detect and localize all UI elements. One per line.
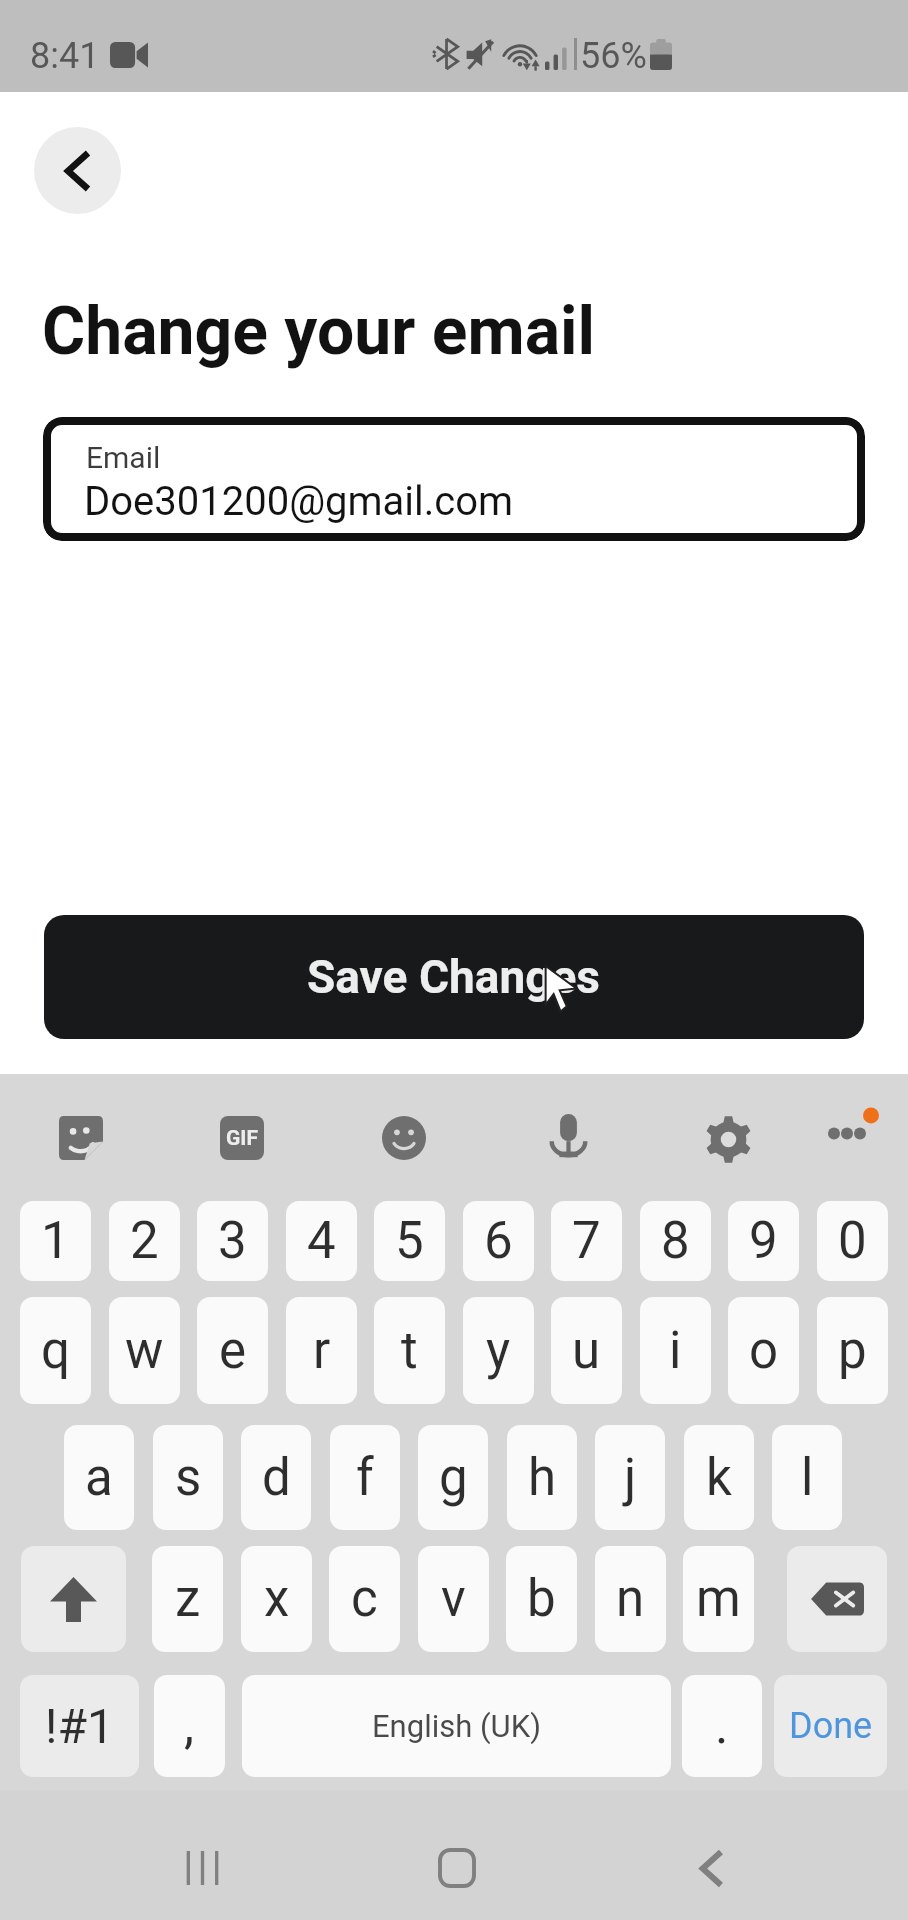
- button[interactable]: 8: [640, 1201, 711, 1281]
- button[interactable]: h: [507, 1425, 577, 1530]
- staticText: Email: [86, 440, 161, 475]
- button[interactable]: .: [682, 1675, 762, 1777]
- button[interactable]: w: [109, 1297, 180, 1404]
- staticText: Change your email: [42, 293, 596, 370]
- button[interactable]: 0: [817, 1201, 888, 1281]
- button[interactable]: ,: [154, 1675, 225, 1777]
- staticText: g: [439, 1448, 468, 1508]
- staticText: w: [125, 1321, 164, 1381]
- button[interactable]: Save Changes: [44, 915, 864, 1039]
- staticText: r: [313, 1321, 331, 1381]
- button[interactable]: 3: [197, 1201, 268, 1281]
- button[interactable]: Recents: [157, 1823, 247, 1913]
- staticText: o: [749, 1321, 779, 1381]
- staticText: x: [264, 1569, 290, 1629]
- button[interactable]: y: [463, 1297, 534, 1404]
- staticText: 56%: [580, 35, 647, 77]
- button[interactable]: 2: [109, 1201, 180, 1281]
- button[interactable]: c: [329, 1546, 400, 1652]
- staticText: t: [401, 1321, 418, 1381]
- staticText: !#1: [45, 1698, 114, 1754]
- staticText: 1: [41, 1211, 70, 1271]
- staticText: Save Changes: [307, 950, 601, 1004]
- button[interactable]: i: [640, 1297, 711, 1404]
- button[interactable]: 4: [286, 1201, 357, 1281]
- button[interactable]: x: [241, 1546, 312, 1652]
- staticText: Doe301200@gmail.com: [84, 478, 514, 525]
- staticText: p: [838, 1321, 867, 1381]
- staticText: .: [715, 1696, 729, 1756]
- staticText: Done: [789, 1705, 873, 1747]
- staticText: e: [219, 1321, 247, 1381]
- button[interactable]: n: [595, 1546, 666, 1652]
- staticText: a: [85, 1448, 113, 1508]
- button[interactable]: Back: [666, 1823, 756, 1913]
- staticText: 4: [307, 1211, 336, 1271]
- staticText: 9: [749, 1211, 778, 1271]
- staticText: b: [527, 1569, 556, 1629]
- button[interactable]: l: [772, 1425, 842, 1530]
- button[interactable]: j: [595, 1425, 665, 1530]
- staticText: n: [616, 1569, 645, 1629]
- button[interactable]: e: [197, 1297, 268, 1404]
- button[interactable]: 7: [551, 1201, 622, 1281]
- button[interactable]: 9: [728, 1201, 799, 1281]
- button[interactable]: Shift: [21, 1546, 126, 1652]
- staticText: GIF: [226, 1126, 258, 1151]
- button[interactable]: English (UK): [242, 1675, 671, 1777]
- button[interactable]: v: [418, 1546, 489, 1652]
- staticText: v: [441, 1569, 466, 1629]
- staticText: 6: [484, 1211, 513, 1271]
- button[interactable]: Email: [43, 417, 865, 541]
- staticText: English (UK): [372, 1708, 541, 1744]
- button[interactable]: b: [506, 1546, 577, 1652]
- staticText: i: [669, 1321, 682, 1381]
- staticText: ,: [184, 1696, 195, 1756]
- staticText: q: [41, 1321, 70, 1381]
- staticText: 8:41: [30, 35, 100, 77]
- staticText: 5: [395, 1211, 424, 1271]
- staticText: z: [175, 1569, 201, 1629]
- button[interactable]: r: [286, 1297, 357, 1404]
- button[interactable]: d: [241, 1425, 311, 1530]
- staticText: 0: [838, 1211, 867, 1271]
- staticText: 3: [218, 1211, 247, 1271]
- staticText: m: [696, 1569, 741, 1629]
- button[interactable]: t: [374, 1297, 445, 1404]
- button[interactable]: 5: [374, 1201, 445, 1281]
- button[interactable]: q: [20, 1297, 91, 1404]
- button[interactable]: g: [418, 1425, 488, 1530]
- button[interactable]: z: [152, 1546, 223, 1652]
- staticText: k: [706, 1448, 732, 1508]
- button[interactable]: GIF: [220, 1116, 264, 1160]
- staticText: f: [356, 1448, 374, 1508]
- staticText: 2: [130, 1211, 159, 1271]
- button[interactable]: 1: [20, 1201, 91, 1281]
- button[interactable]: 6: [463, 1201, 534, 1281]
- staticText: 8: [661, 1211, 690, 1271]
- staticText: 7: [572, 1211, 601, 1271]
- button[interactable]: s: [153, 1425, 223, 1530]
- button[interactable]: f: [330, 1425, 400, 1530]
- button[interactable]: !#1: [20, 1675, 139, 1777]
- staticText: c: [351, 1569, 378, 1629]
- button[interactable]: Back: [34, 127, 121, 214]
- staticText: s: [175, 1448, 202, 1508]
- button[interactable]: k: [684, 1425, 754, 1530]
- button[interactable]: o: [728, 1297, 799, 1404]
- button[interactable]: Backspace: [787, 1546, 887, 1652]
- button[interactable]: a: [64, 1425, 134, 1530]
- staticText: j: [624, 1448, 637, 1508]
- staticText: h: [528, 1448, 557, 1508]
- button[interactable]: Done: [774, 1675, 887, 1777]
- button[interactable]: u: [551, 1297, 622, 1404]
- staticText: d: [262, 1448, 291, 1508]
- button[interactable]: p: [817, 1297, 888, 1404]
- staticText: y: [486, 1321, 511, 1381]
- button[interactable]: Home: [412, 1823, 502, 1913]
- staticText: u: [572, 1321, 601, 1381]
- staticText: l: [801, 1448, 814, 1508]
- button[interactable]: m: [683, 1546, 754, 1652]
